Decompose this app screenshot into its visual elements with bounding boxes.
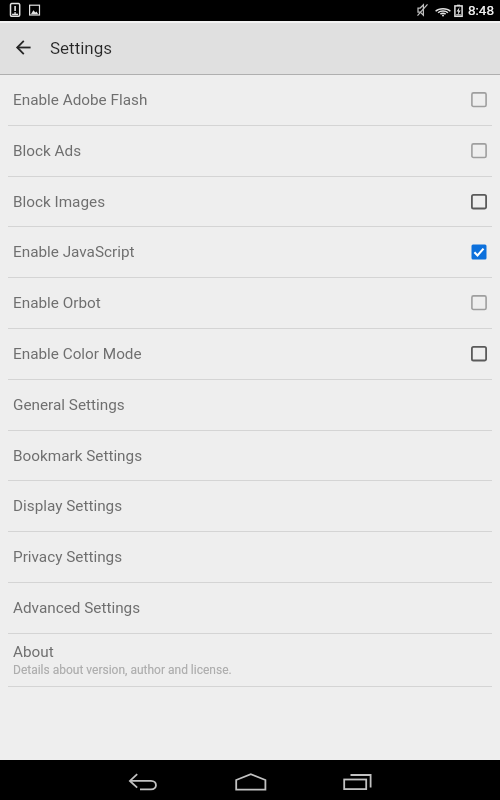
button[interactable]: General Settings xyxy=(0,380,500,430)
button[interactable]: Enable Adobe Flash xyxy=(0,75,500,125)
staticText: Privacy Settings xyxy=(13,548,123,566)
button[interactable]: Enable Color Mode xyxy=(0,329,500,379)
staticText: Advanced Settings xyxy=(13,599,141,617)
button[interactable]: Home xyxy=(215,762,287,800)
button[interactable]: Bookmark Settings xyxy=(0,431,500,480)
button[interactable]: Enable Orbot xyxy=(0,278,500,328)
button[interactable]: Recent apps xyxy=(322,762,394,800)
staticText: 8:48 xyxy=(468,2,495,18)
staticText: Display Settings xyxy=(13,497,123,515)
button[interactable]: Advanced Settings xyxy=(0,583,500,633)
button[interactable]: Block Ads xyxy=(0,126,500,176)
staticText: Bookmark Settings xyxy=(13,447,143,465)
staticText: Enable Color Mode xyxy=(13,345,471,363)
button[interactable]: Back xyxy=(108,762,180,800)
staticText: Block Ads xyxy=(13,142,471,160)
staticText: Details about version, author and licens… xyxy=(13,663,232,677)
button[interactable]: About xyxy=(0,634,500,686)
staticText: Enable Adobe Flash xyxy=(13,91,471,109)
staticText: About xyxy=(13,643,54,661)
staticText: Block Images xyxy=(13,193,471,211)
staticText: Settings xyxy=(50,38,113,58)
button[interactable]: Display Settings xyxy=(0,481,500,531)
staticText: General Settings xyxy=(13,396,125,414)
button[interactable]: Privacy Settings xyxy=(0,532,500,582)
staticText: Enable JavaScript xyxy=(13,243,471,261)
button[interactable]: Navigate up xyxy=(0,21,47,74)
button[interactable]: Block Images xyxy=(0,177,500,226)
staticText: Enable Orbot xyxy=(13,294,471,312)
button[interactable]: Enable JavaScript xyxy=(0,227,500,277)
